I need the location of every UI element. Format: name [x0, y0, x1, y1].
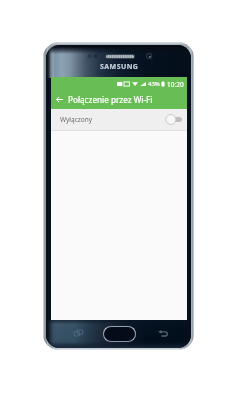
staticText: Wyłączony	[60, 115, 93, 124]
staticText: 10:20	[167, 80, 184, 89]
staticText: Połączenie przez Wi-Fi	[68, 94, 153, 105]
staticText: 43%	[148, 80, 160, 88]
button[interactable]: Wyłączony	[51, 109, 187, 130]
button[interactable]: Recent apps	[74, 330, 83, 336]
button[interactable]: Back	[51, 89, 187, 109]
staticText: SAMSUNG	[100, 62, 139, 72]
button[interactable]: Home	[104, 327, 135, 341]
other: Back	[55, 95, 64, 104]
button[interactable]: Back	[158, 330, 168, 337]
